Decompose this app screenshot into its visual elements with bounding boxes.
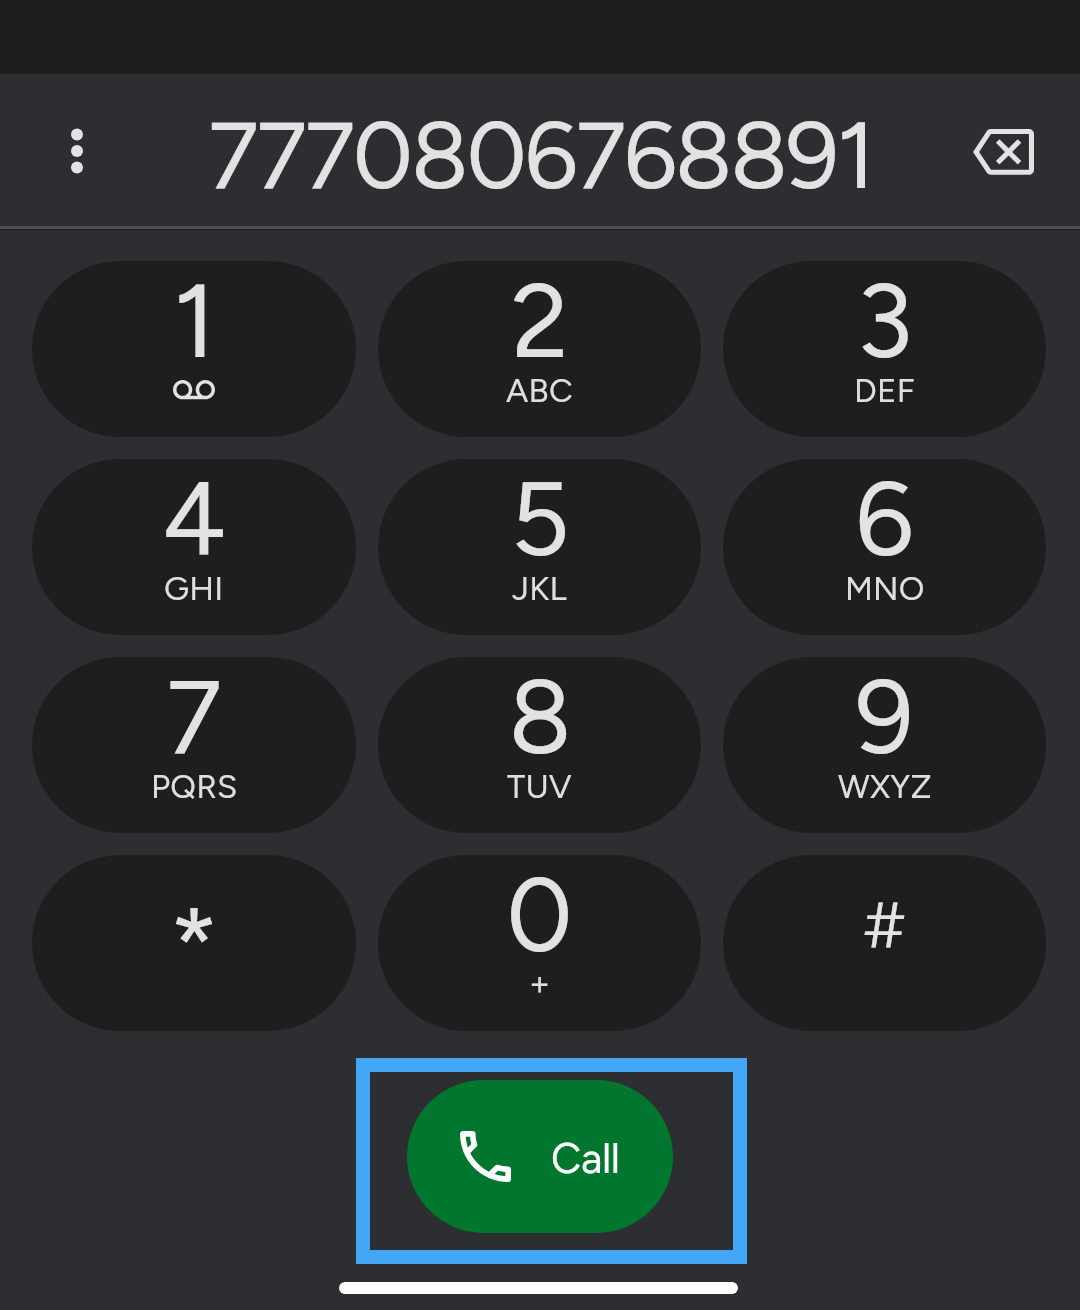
staticText: 1 <box>173 261 216 383</box>
button[interactable]: Backspace <box>948 97 1058 207</box>
staticText: PQRS <box>151 767 238 807</box>
staticText: 8 <box>508 657 572 779</box>
staticText: 7 <box>166 657 222 779</box>
button[interactable]: 7 <box>32 657 356 833</box>
button[interactable]: 1 <box>32 261 356 437</box>
staticText: 9 <box>855 657 914 779</box>
staticText: 5 <box>510 459 570 581</box>
button[interactable]: 6 <box>723 459 1046 635</box>
button[interactable]: More options <box>27 101 127 201</box>
button[interactable]: Call <box>407 1080 673 1233</box>
button[interactable]: Call <box>356 1058 747 1264</box>
staticText: MNO <box>845 569 925 609</box>
button[interactable]: 0 <box>378 855 701 1031</box>
staticText: JKL <box>512 569 567 609</box>
staticText: 6 <box>855 459 914 581</box>
staticText: 4 <box>162 459 226 581</box>
button[interactable]: 9 <box>723 657 1046 833</box>
button[interactable]: * <box>32 855 356 1031</box>
staticText: 0 <box>506 855 573 977</box>
staticText: 7770806768891 <box>208 99 874 212</box>
staticText: # <box>864 886 905 964</box>
staticText: ABC <box>506 371 573 411</box>
staticText: Call <box>551 1133 620 1183</box>
staticText: 3 <box>856 261 913 383</box>
button[interactable]: 4 <box>32 459 356 635</box>
staticText: TUV <box>507 767 572 807</box>
button[interactable]: 8 <box>378 657 701 833</box>
button[interactable]: 2 <box>378 261 701 437</box>
button[interactable]: 3 <box>723 261 1046 437</box>
staticText: * <box>169 884 219 1008</box>
staticText: + <box>529 963 551 1004</box>
staticText: GHI <box>164 569 224 609</box>
button[interactable]: 5 <box>378 459 701 635</box>
staticText: WXYZ <box>838 767 932 807</box>
button[interactable]: # <box>723 855 1046 1031</box>
staticText: DEF <box>854 371 915 411</box>
staticText: 2 <box>511 261 569 383</box>
